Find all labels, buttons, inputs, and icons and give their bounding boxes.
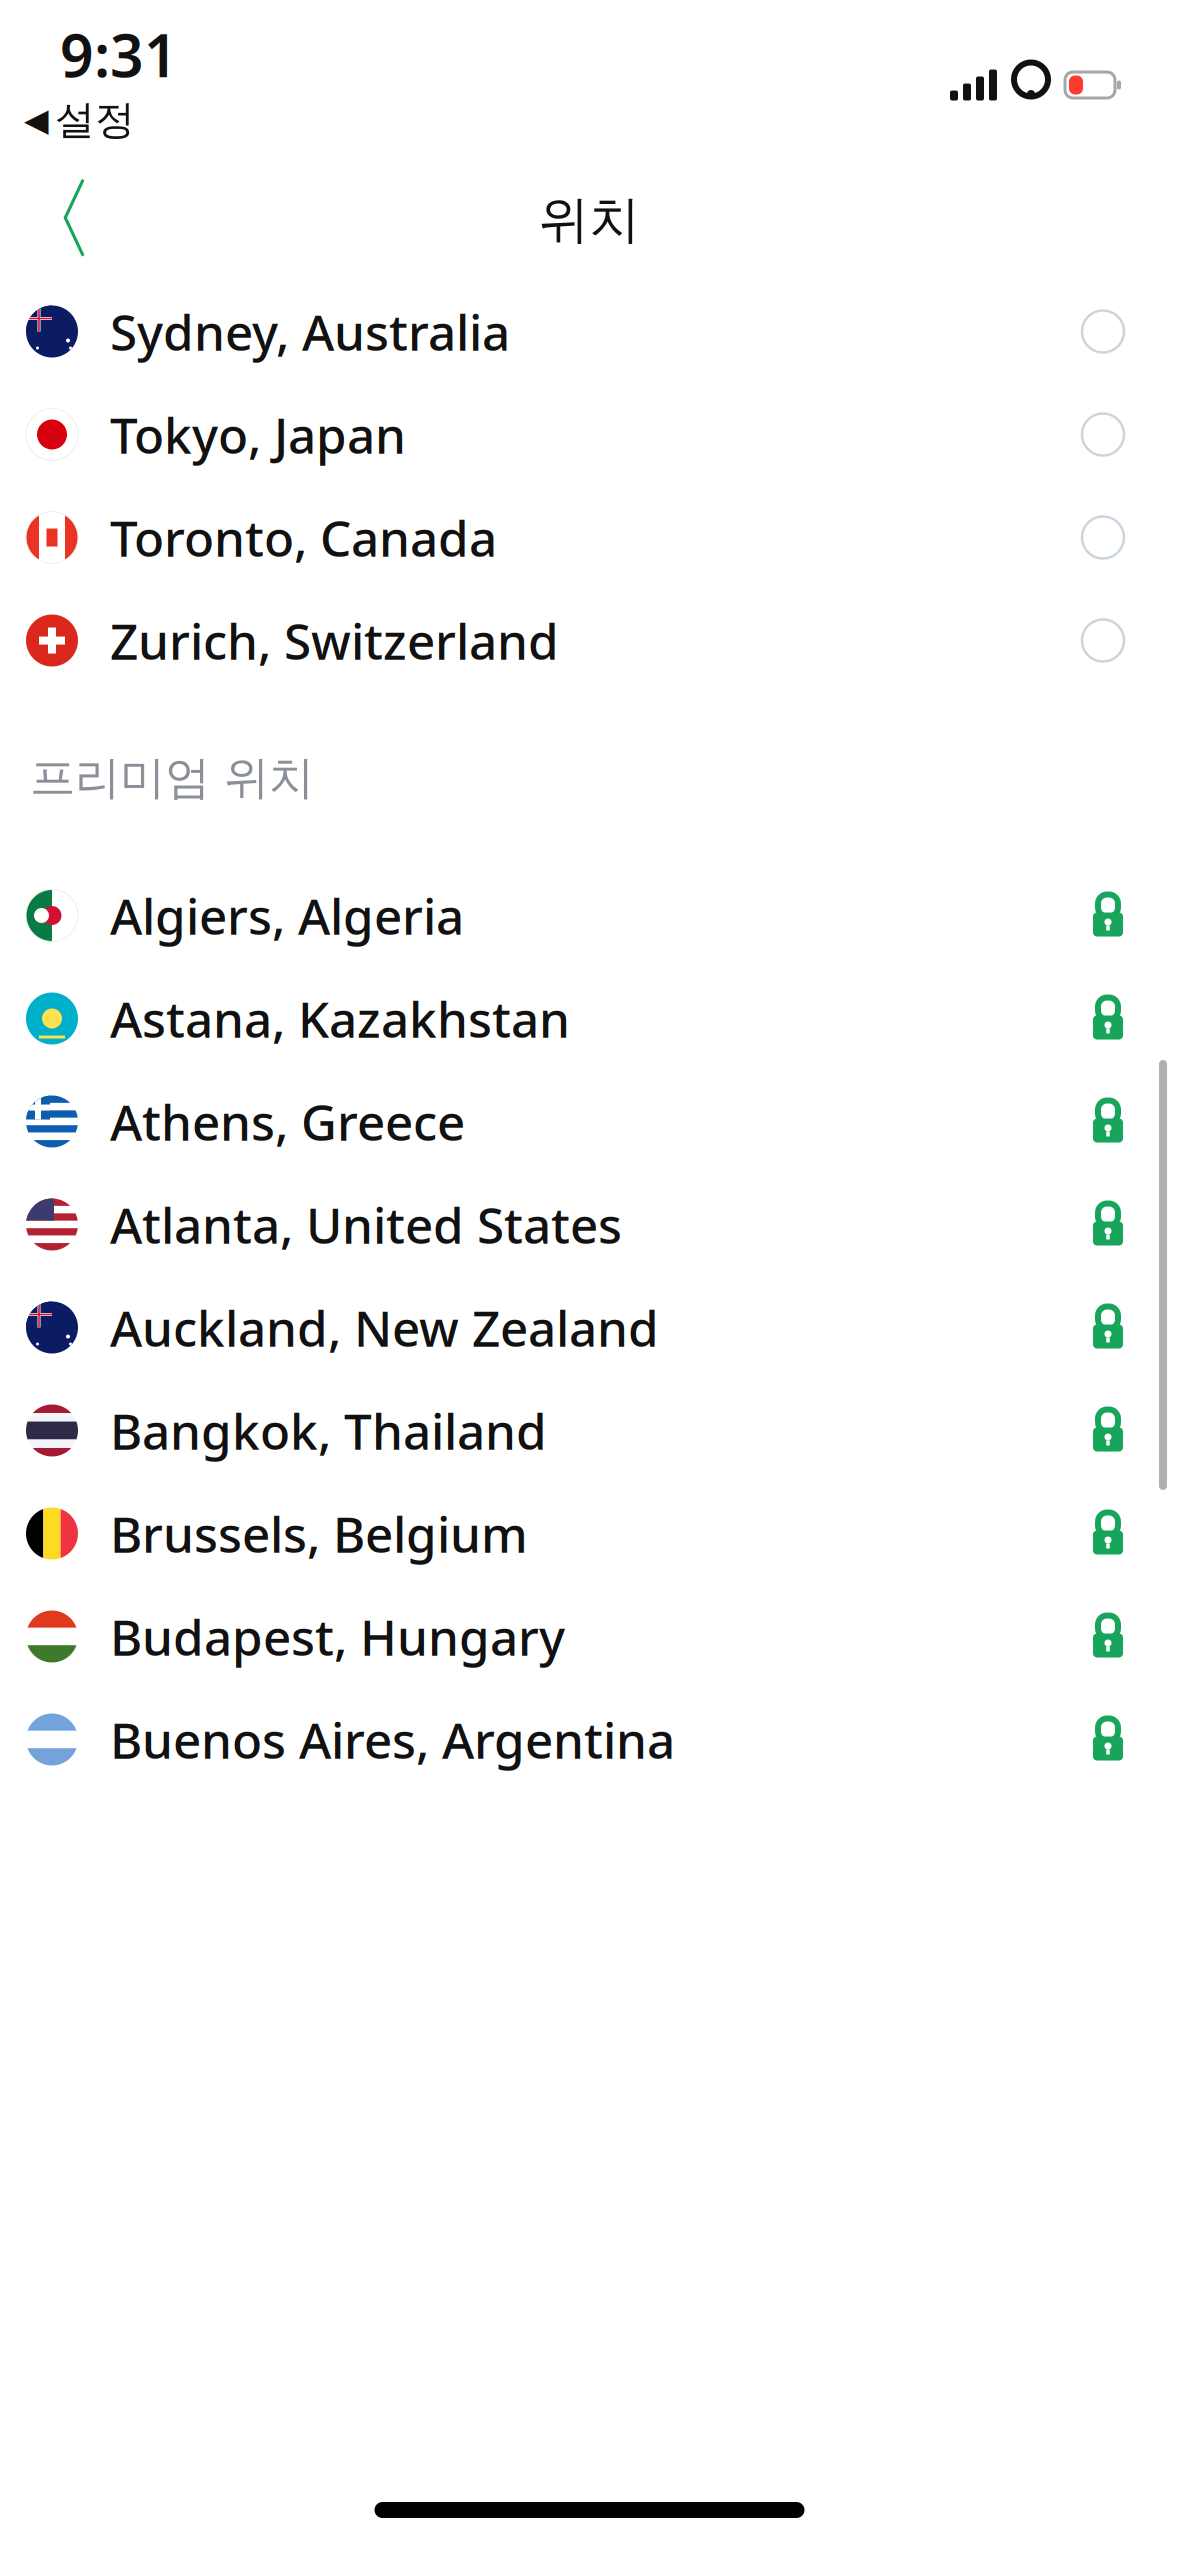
staticText: Sydney, Australia xyxy=(110,299,510,364)
staticText: Tokyo, Japan xyxy=(110,402,406,467)
staticText: Brussels, Belgium xyxy=(110,1501,528,1566)
staticText: Budapest, Hungary xyxy=(110,1604,565,1669)
staticText: Zurich, Switzerland xyxy=(110,608,559,673)
staticText: Buenos Aires, Argentina xyxy=(110,1707,675,1772)
button[interactable]: Tokyo, Japan xyxy=(0,383,1179,486)
button[interactable]: Zurich, Switzerland xyxy=(0,589,1179,692)
button[interactable]: Toronto, Canada xyxy=(0,486,1179,589)
staticText: Algiers, Algeria xyxy=(110,883,464,948)
staticText: ◀ xyxy=(24,102,49,138)
button[interactable]: ◀ xyxy=(0,93,135,144)
button[interactable]: Sydney, Australia xyxy=(0,280,1179,383)
staticText: Toronto, Canada xyxy=(110,505,497,570)
button[interactable]: Budapest, Hungary xyxy=(0,1585,1179,1688)
button[interactable]: Bangkok, Thailand xyxy=(0,1379,1179,1482)
button[interactable]: Atlanta, United States xyxy=(0,1173,1179,1276)
staticText: 〈 xyxy=(8,166,96,274)
button[interactable]: Buenos Aires, Argentina xyxy=(0,1688,1179,1791)
button[interactable]: Brussels, Belgium xyxy=(0,1482,1179,1585)
staticText: 설정 xyxy=(55,95,135,144)
staticText: 위치 xyxy=(538,189,640,251)
staticText: 9:31 xyxy=(60,15,178,93)
staticText: Auckland, New Zealand xyxy=(110,1295,659,1360)
staticText: Astana, Kazakhstan xyxy=(110,986,570,1051)
button[interactable]: Astana, Kazakhstan xyxy=(0,967,1179,1070)
staticText: Athens, Greece xyxy=(110,1089,465,1154)
button[interactable]: Algiers, Algeria xyxy=(0,864,1179,967)
staticText: Atlanta, United States xyxy=(110,1192,622,1257)
staticText: 프리미엄 위치 xyxy=(30,750,314,806)
button[interactable]: Athens, Greece xyxy=(0,1070,1179,1173)
button[interactable]: Auckland, New Zealand xyxy=(0,1276,1179,1379)
button[interactable]: Back xyxy=(0,175,92,265)
staticText: Bangkok, Thailand xyxy=(110,1398,547,1463)
